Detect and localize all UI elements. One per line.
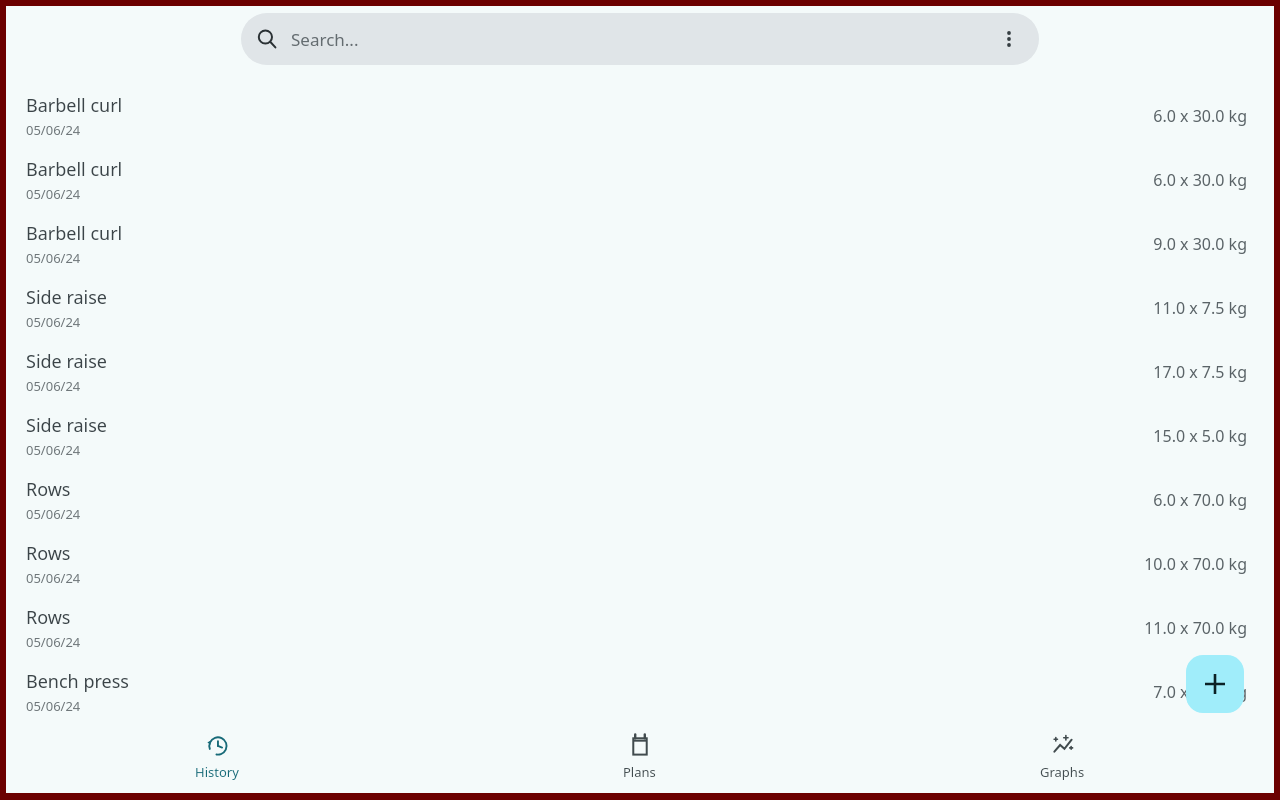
staticText: 10.0 x 70.0 kg bbox=[1144, 553, 1247, 575]
staticText: Barbell curl bbox=[26, 221, 123, 246]
staticText: 11.0 x 70.0 kg bbox=[1144, 617, 1247, 639]
staticText: 7.0 x 70.0 kg bbox=[1153, 681, 1247, 703]
button[interactable]: Rows bbox=[6, 532, 1274, 596]
button[interactable]: Add entry bbox=[1186, 655, 1244, 713]
staticText: 6.0 x 70.0 kg bbox=[1153, 489, 1247, 511]
button[interactable]: History bbox=[6, 715, 428, 793]
button[interactable]: Barbell curl bbox=[6, 84, 1274, 148]
button[interactable]: Side raise bbox=[6, 340, 1274, 404]
staticText: 05/06/24 bbox=[26, 377, 81, 395]
staticText: Plans bbox=[623, 763, 656, 781]
staticText: 05/06/24 bbox=[26, 505, 81, 523]
staticText: Bench press bbox=[26, 669, 129, 694]
staticText: 05/06/24 bbox=[26, 121, 81, 139]
staticText: Barbell curl bbox=[26, 93, 123, 118]
button[interactable]: Search bbox=[241, 13, 1039, 65]
other: Search bbox=[257, 29, 277, 49]
staticText: Graphs bbox=[1040, 763, 1085, 781]
button[interactable]: Side raise bbox=[6, 276, 1274, 340]
staticText: 05/06/24 bbox=[26, 633, 81, 651]
staticText: History bbox=[195, 763, 239, 781]
staticText: 05/06/24 bbox=[26, 569, 81, 587]
staticText: Side raise bbox=[26, 285, 108, 310]
staticText: 11.0 x 7.5 kg bbox=[1153, 297, 1247, 319]
button[interactable]: Rows bbox=[6, 596, 1274, 660]
staticText: 9.0 x 30.0 kg bbox=[1153, 233, 1247, 255]
staticText: 05/06/24 bbox=[26, 697, 81, 715]
staticText: 6.0 x 30.0 kg bbox=[1153, 105, 1247, 127]
button[interactable]: Plans bbox=[428, 715, 851, 781]
staticText: 05/06/24 bbox=[26, 441, 81, 459]
button[interactable]: Barbell curl bbox=[6, 148, 1274, 212]
button[interactable]: Bench press bbox=[6, 660, 1274, 724]
button[interactable]: Rows bbox=[6, 468, 1274, 532]
staticText: Rows bbox=[26, 605, 71, 630]
staticText: Side raise bbox=[26, 413, 108, 438]
button[interactable]: More options bbox=[987, 17, 1031, 61]
button[interactable]: Side raise bbox=[6, 404, 1274, 468]
staticText: 05/06/24 bbox=[26, 185, 81, 203]
staticText: 05/06/24 bbox=[26, 249, 81, 267]
button[interactable]: Barbell curl bbox=[6, 212, 1274, 276]
staticText: Search... bbox=[291, 28, 359, 51]
staticText: 05/06/24 bbox=[26, 313, 81, 331]
staticText: Side raise bbox=[26, 349, 108, 374]
staticText: 6.0 x 30.0 kg bbox=[1153, 169, 1247, 191]
staticText: Rows bbox=[26, 541, 71, 566]
staticText: Barbell curl bbox=[26, 157, 123, 182]
button[interactable]: Graphs bbox=[851, 715, 1274, 781]
staticText: Rows bbox=[26, 477, 71, 502]
staticText: 17.0 x 7.5 kg bbox=[1153, 361, 1247, 383]
staticText: 15.0 x 5.0 kg bbox=[1153, 425, 1247, 447]
